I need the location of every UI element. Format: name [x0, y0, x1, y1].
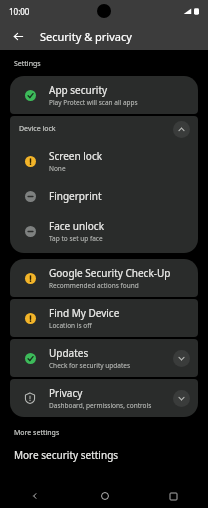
- staticText: Updates: [49, 346, 89, 360]
- staticText: Recommended actions found: [49, 281, 139, 290]
- button[interactable]: Home: [70, 484, 139, 508]
- staticText: Face unlock: [49, 219, 104, 233]
- button[interactable]: Face unlock: [10, 212, 198, 250]
- button[interactable]: Collapse device lock: [173, 121, 190, 138]
- button[interactable]: Google Security Check-Up: [10, 259, 198, 297]
- staticText: Privacy: [49, 386, 83, 400]
- staticText: Security & privacy: [40, 29, 132, 44]
- button[interactable]: Privacy: [10, 379, 198, 417]
- button[interactable]: App security: [10, 76, 198, 114]
- staticText: More settings: [14, 428, 60, 438]
- staticText: Find My Device: [49, 306, 120, 320]
- staticText: Settings: [14, 59, 41, 69]
- button[interactable]: Recent apps: [139, 484, 208, 508]
- staticText: App security: [49, 83, 108, 97]
- button[interactable]: Expand updates: [173, 350, 190, 367]
- button[interactable]: Updates: [10, 339, 198, 377]
- button[interactable]: Find My Device: [10, 299, 198, 337]
- staticText: Screen lock: [49, 149, 103, 163]
- button[interactable]: Back: [8, 26, 28, 46]
- staticText: Dashboard, permissions, controls: [49, 401, 152, 410]
- staticText: Play Protect will scan all apps: [49, 98, 138, 107]
- button[interactable]: Expand privacy: [173, 390, 190, 407]
- staticText: Google Security Check-Up: [49, 266, 171, 280]
- staticText: Check for security updates: [49, 361, 131, 370]
- staticText: 10:00: [9, 6, 30, 17]
- staticText: Tap to set up face: [49, 234, 103, 243]
- button[interactable]: Fingerprint: [10, 180, 198, 212]
- staticText: Location is off: [49, 321, 92, 330]
- button[interactable]: Screen lock: [10, 142, 198, 180]
- staticText: Fingerprint: [49, 189, 102, 203]
- staticText: None: [49, 164, 66, 173]
- button[interactable]: More security settings: [0, 448, 208, 462]
- staticText: More security settings: [14, 448, 119, 462]
- staticText: Device lock: [19, 124, 56, 134]
- button[interactable]: Back: [0, 484, 70, 508]
